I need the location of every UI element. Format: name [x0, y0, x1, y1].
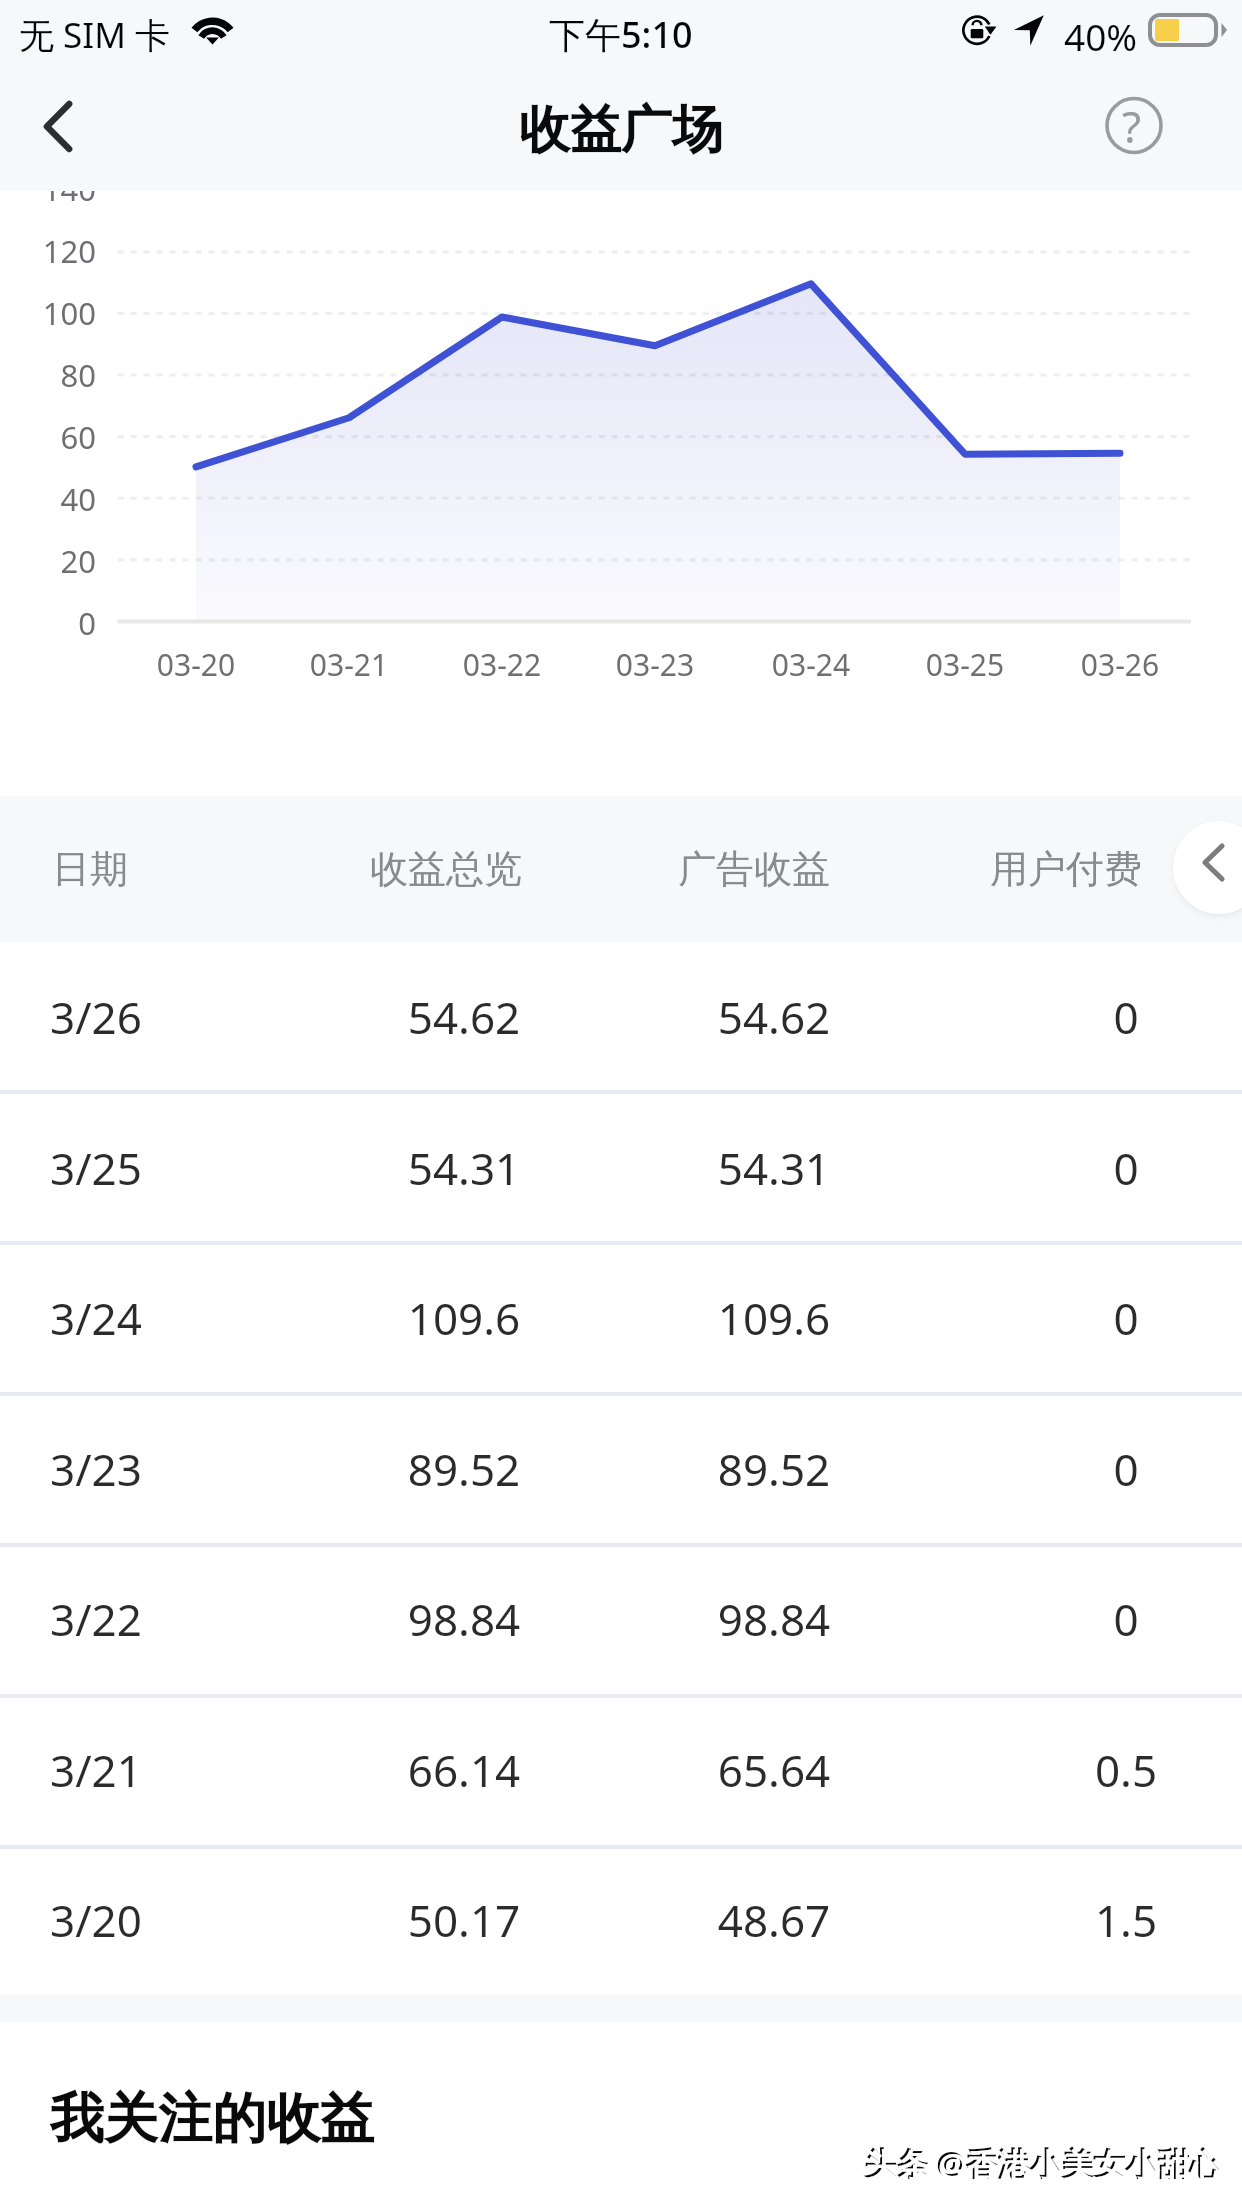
- staticText: 3/22: [0, 1589, 236, 1649]
- staticText: 98.84: [324, 1589, 604, 1649]
- staticText: 0: [986, 1439, 1242, 1499]
- staticText: 20: [0, 540, 96, 582]
- staticText: 54.62: [634, 987, 914, 1047]
- staticText: 54.31: [324, 1138, 604, 1198]
- staticText: 3/20: [0, 1890, 236, 1950]
- staticText: 80: [0, 354, 96, 396]
- staticText: 广告收益: [634, 845, 874, 893]
- staticText: 100: [0, 292, 96, 334]
- staticText: 3/23: [0, 1439, 236, 1499]
- staticText: 0.5: [986, 1740, 1242, 1800]
- staticText: 60: [0, 416, 96, 458]
- staticText: 收益广场: [519, 98, 723, 162]
- staticText: 0: [986, 1589, 1242, 1649]
- staticText: 03-24: [736, 644, 886, 685]
- button[interactable]: 3/21: [0, 1694, 1242, 1845]
- staticText: 用户付费: [946, 845, 1186, 893]
- button[interactable]: 3/25: [0, 1092, 1242, 1243]
- staticText: 03-26: [1045, 644, 1195, 685]
- staticText: 40%: [1064, 11, 1138, 61]
- button[interactable]: 3/20: [0, 1845, 1242, 1995]
- staticText: 0: [0, 602, 96, 644]
- staticText: 54.31: [634, 1138, 914, 1198]
- staticText: 3/21: [0, 1740, 236, 1800]
- staticText: 03-20: [121, 644, 271, 685]
- staticText: 0: [986, 1138, 1242, 1198]
- staticText: 3/25: [0, 1138, 236, 1198]
- staticText: 日期: [0, 845, 210, 893]
- staticText: 下午5:10: [549, 10, 693, 59]
- staticText: 无 SIM 卡: [19, 11, 171, 59]
- staticText: 收益总览: [326, 845, 566, 893]
- button[interactable]: 3/22: [0, 1544, 1242, 1694]
- staticText: 109.6: [634, 1288, 914, 1348]
- staticText: 0: [986, 987, 1242, 1047]
- staticText: 50.17: [324, 1890, 604, 1950]
- staticText: ?: [1122, 96, 1142, 156]
- staticText: 头条 @香港小美女小甜心: [866, 2143, 1224, 2187]
- button[interactable]: Back: [14, 82, 102, 170]
- staticText: 40: [0, 478, 96, 520]
- staticText: 03-23: [580, 644, 730, 685]
- staticText: 48.67: [634, 1890, 914, 1950]
- button[interactable]: Help: [1090, 80, 1180, 170]
- button[interactable]: 3/23: [0, 1393, 1242, 1544]
- staticText: 3/24: [0, 1288, 236, 1348]
- staticText: 65.64: [634, 1740, 914, 1800]
- staticText: 03-21: [274, 644, 424, 685]
- staticText: 头条 @香港小美女小甜心: [864, 2141, 1222, 2185]
- staticText: 66.14: [324, 1740, 604, 1800]
- staticText: 0: [986, 1288, 1242, 1348]
- staticText: 03-25: [890, 644, 1040, 685]
- staticText: 我关注的收益: [50, 2085, 374, 2153]
- staticText: 140: [0, 191, 96, 210]
- button[interactable]: 3/24: [0, 1243, 1242, 1393]
- staticText: 120: [0, 230, 96, 272]
- staticText: 3/26: [0, 987, 236, 1047]
- staticText: 1.5: [986, 1890, 1242, 1950]
- button[interactable]: Scroll columns left: [1173, 821, 1242, 914]
- button[interactable]: 3/26: [0, 942, 1242, 1092]
- staticText: 89.52: [634, 1439, 914, 1499]
- staticText: 98.84: [634, 1589, 914, 1649]
- staticText: 89.52: [324, 1439, 604, 1499]
- staticText: 54.62: [324, 987, 604, 1047]
- staticText: 109.6: [324, 1288, 604, 1348]
- staticText: 03-22: [427, 644, 577, 685]
